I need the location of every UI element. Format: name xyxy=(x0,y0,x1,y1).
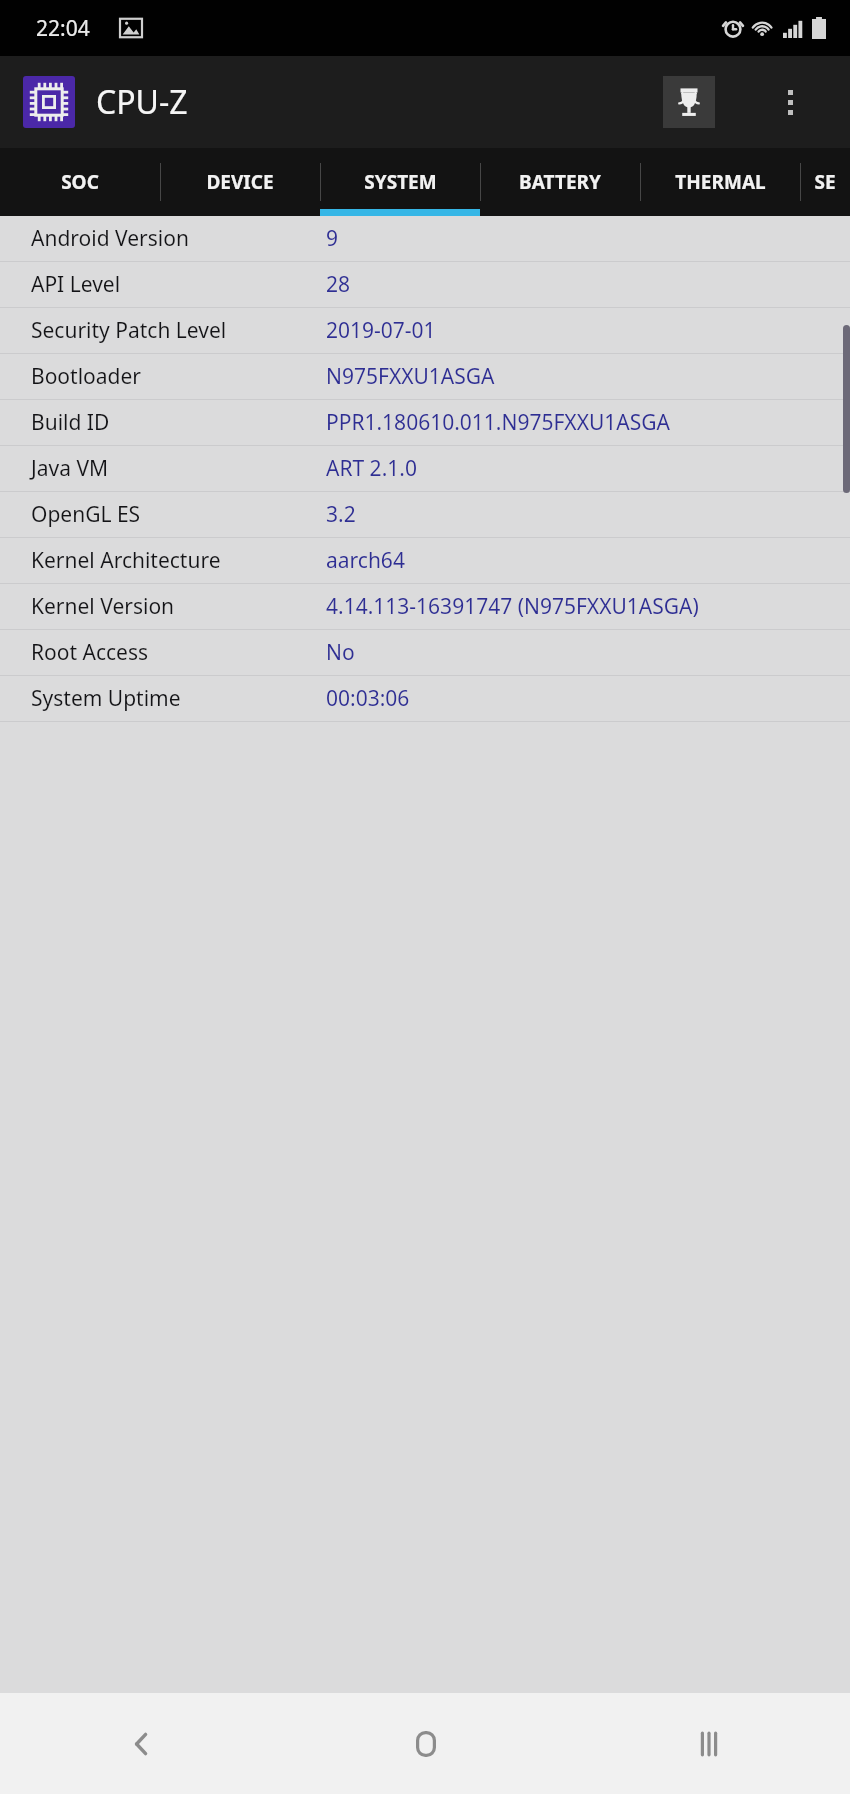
staticText: API Level xyxy=(31,270,121,299)
staticText: Kernel Architecture xyxy=(31,546,221,575)
staticText: 00:03:06 xyxy=(326,684,410,713)
button[interactable]: Home xyxy=(284,1693,567,1794)
staticText: Android Version xyxy=(31,224,189,253)
staticText: aarch64 xyxy=(326,546,405,575)
staticText: System Uptime xyxy=(31,684,181,713)
staticText: Security Patch Level xyxy=(31,316,227,345)
staticText: BATTERY xyxy=(519,169,601,195)
button[interactable]: System Uptime xyxy=(0,676,850,722)
staticText: 4.14.113-16391747 (N975FXXU1ASGA) xyxy=(326,592,699,621)
staticText: SYSTEM xyxy=(364,169,437,195)
button[interactable]: THERMAL xyxy=(640,148,800,216)
button[interactable]: Android Version xyxy=(0,216,850,262)
button[interactable]: More options xyxy=(766,78,814,126)
staticText: 2019-07-01 xyxy=(326,316,436,345)
staticText: CPU-Z xyxy=(96,80,188,124)
staticText: Build ID xyxy=(31,408,110,437)
button[interactable]: SOC xyxy=(0,148,160,216)
staticText: OpenGL ES xyxy=(31,500,141,529)
button[interactable]: Bootloader xyxy=(0,354,850,400)
staticText: Root Access xyxy=(31,638,149,667)
staticText: DEVICE xyxy=(206,169,274,195)
button[interactable]: OpenGL ES xyxy=(0,492,850,538)
staticText: 28 xyxy=(326,270,351,299)
staticText: PPR1.180610.011.N975FXXU1ASGA xyxy=(326,408,670,437)
staticText: 3.2 xyxy=(326,500,356,529)
button[interactable]: SYSTEM xyxy=(320,148,480,216)
staticText: Kernel Version xyxy=(31,592,175,621)
button[interactable]: BATTERY xyxy=(480,148,640,216)
staticText: Java VM xyxy=(31,454,109,483)
button[interactable]: DEVICE xyxy=(160,148,320,216)
staticText: Bootloader xyxy=(31,362,141,391)
staticText: SE xyxy=(814,169,836,195)
button[interactable]: Java VM xyxy=(0,446,850,492)
button[interactable]: Back xyxy=(0,1693,284,1794)
staticText: ART 2.1.0 xyxy=(326,454,417,483)
button[interactable]: Kernel Architecture xyxy=(0,538,850,584)
button[interactable]: Benchmark xyxy=(663,76,715,128)
button[interactable]: Build ID xyxy=(0,400,850,446)
button[interactable]: Root Access xyxy=(0,630,850,676)
staticText: 9 xyxy=(326,224,339,253)
staticText: N975FXXU1ASGA xyxy=(326,362,495,391)
staticText: SOC xyxy=(61,169,99,195)
button[interactable]: SE xyxy=(800,148,850,216)
button[interactable]: Security Patch Level xyxy=(0,308,850,354)
staticText: 22:04 xyxy=(36,14,90,43)
staticText: THERMAL xyxy=(675,169,766,195)
button[interactable]: Recents xyxy=(567,1693,850,1794)
button[interactable]: Kernel Version xyxy=(0,584,850,630)
staticText: No xyxy=(326,638,355,667)
button[interactable]: API Level xyxy=(0,262,850,308)
